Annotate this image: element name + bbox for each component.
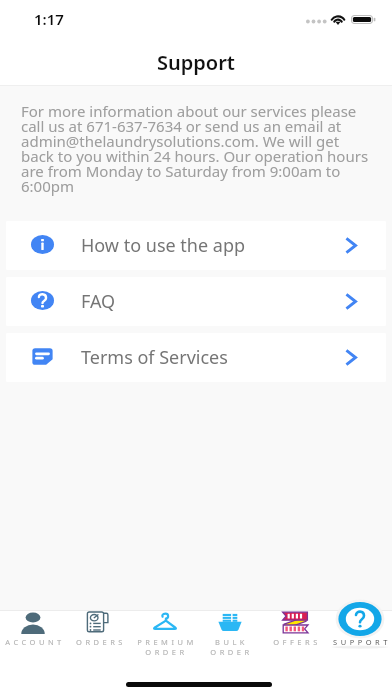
staticText: ACCOUNT <box>5 637 65 647</box>
button[interactable]: Bulk order <box>197 610 262 657</box>
button[interactable]: Orders <box>66 610 132 647</box>
button[interactable]: Offers <box>262 610 327 647</box>
staticText: PREMIUM <box>137 637 197 647</box>
button[interactable]: Account <box>0 610 66 647</box>
button[interactable]: Support <box>327 610 392 647</box>
staticText: Support <box>157 49 235 76</box>
staticText: Terms of Services <box>81 345 228 370</box>
button[interactable]: How to use the app <box>6 221 386 270</box>
staticText: SUPPORT <box>333 637 391 647</box>
button[interactable]: FAQ <box>6 277 386 326</box>
button[interactable]: Support <box>331 596 389 642</box>
staticText: BULK <box>215 637 248 647</box>
staticText: 1:17 <box>34 9 64 29</box>
button[interactable]: Premium order <box>132 610 197 657</box>
staticText: FAQ <box>81 289 116 314</box>
button[interactable]: Terms of Services <box>6 333 386 382</box>
staticText: For more information about our services … <box>21 101 373 196</box>
staticText: How to use the app <box>81 233 246 258</box>
staticText: OFFERS <box>273 637 321 647</box>
staticText: ORDERS <box>76 637 126 647</box>
staticText: ORDER <box>145 647 188 657</box>
staticText: ORDER <box>210 647 253 657</box>
